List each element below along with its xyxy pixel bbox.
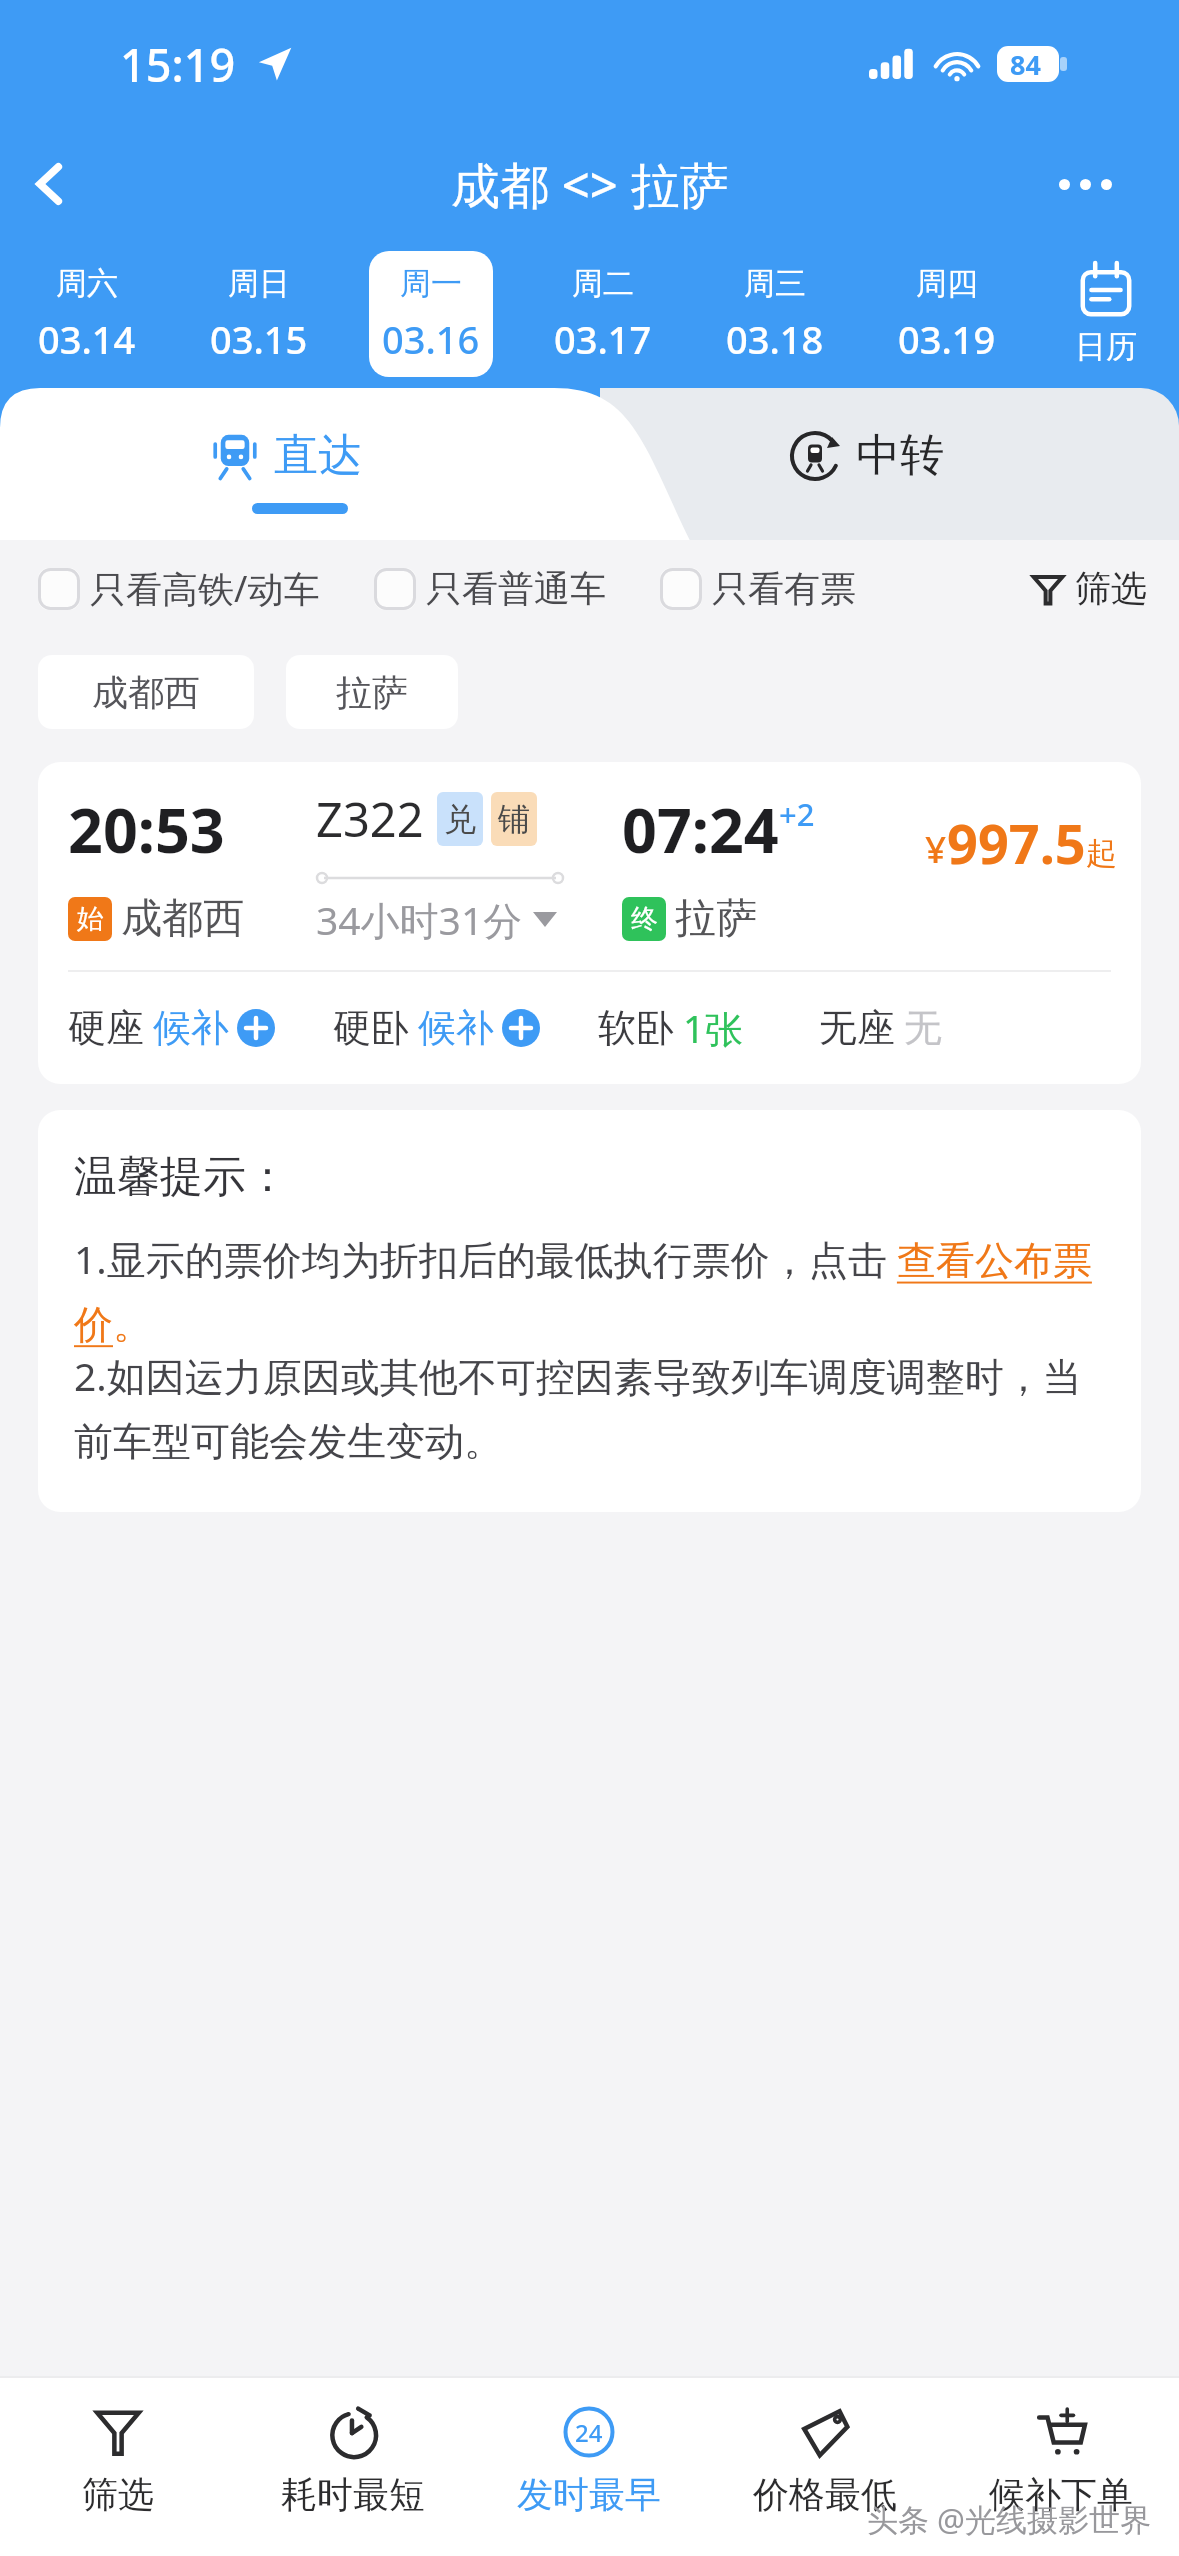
staticText: 软卧 (598, 1004, 674, 1052)
button[interactable]: 周二 (541, 251, 665, 377)
button[interactable]: 周三 (713, 251, 837, 377)
staticText: 无座 (819, 1004, 895, 1052)
button[interactable]: 无座 (819, 1004, 942, 1052)
staticText: 铺 (498, 799, 530, 839)
button[interactable]: 周日 (197, 251, 321, 377)
staticText: 起 (1086, 834, 1117, 873)
staticText: 候补 (153, 1004, 229, 1052)
staticText: 筛选 (1075, 566, 1147, 611)
staticText: 拉萨 (675, 893, 757, 945)
button[interactable]: 软卧 (598, 1002, 743, 1054)
staticText: 15:19 (120, 34, 236, 95)
staticText: 温馨提示： (74, 1150, 289, 1204)
staticText: 成都 <> 拉萨 (451, 151, 729, 218)
button[interactable]: 成都西 (38, 655, 254, 729)
button[interactable]: 硬卧 (333, 1004, 540, 1052)
button[interactable]: 只看有票 (660, 566, 856, 611)
staticText: 周一 (400, 264, 462, 303)
staticText: 2.如因运力原因或其他不可控因素导致列车调度调整时，当前车型可能会发生变动。 (74, 1349, 1113, 1466)
staticText: 只看高铁/动车 (90, 564, 320, 613)
button[interactable]: 中转 (790, 428, 944, 483)
staticText: 筛选 (82, 2472, 154, 2517)
staticText: 直达 (274, 428, 362, 483)
staticText: 周四 (916, 264, 978, 303)
staticText: 耗时最短 (281, 2472, 425, 2517)
button[interactable]: More options (1043, 142, 1127, 226)
staticText: 997.5 (947, 806, 1086, 880)
button[interactable]: Calendar (1033, 240, 1179, 388)
staticText: 03.14 (38, 313, 136, 365)
button[interactable]: 只看高铁/动车 (38, 564, 320, 613)
staticText: 1.显示的票价均为折扣后的最低执行票价，点击 查看公布票价。 (74, 1232, 1113, 1349)
staticText: +2 (779, 793, 815, 835)
button[interactable]: 周一 (369, 251, 493, 377)
button[interactable]: 24 (471, 2406, 707, 2556)
button[interactable]: 直达 (212, 428, 362, 483)
staticText: 兑 (444, 799, 476, 839)
staticText: 24 (575, 2416, 603, 2449)
staticText: 34小时31分 (316, 893, 523, 946)
staticText: 03.15 (210, 313, 308, 365)
staticText: 84 (1010, 46, 1041, 82)
button[interactable]: 价格最低 (707, 2406, 943, 2556)
button[interactable]: 硬座 (68, 1004, 275, 1052)
staticText: 拉萨 (336, 670, 408, 715)
button[interactable]: 拉萨 (286, 655, 458, 729)
staticText: 周六 (56, 264, 118, 303)
button[interactable]: 筛选 (0, 2406, 235, 2556)
staticText: 只看普通车 (426, 566, 606, 611)
staticText: 候补 (418, 1004, 494, 1052)
staticText: 中转 (856, 428, 944, 483)
staticText: 硬卧 (333, 1004, 409, 1052)
button[interactable]: Back (0, 134, 100, 234)
staticText: 候补下单 (989, 2472, 1133, 2517)
staticText: 周二 (572, 264, 634, 303)
staticText: 终 (631, 902, 658, 936)
staticText: 日历 (1075, 327, 1137, 366)
button[interactable]: 周四 (885, 251, 1009, 377)
staticText: 03.19 (898, 313, 996, 365)
staticText: 周三 (744, 264, 806, 303)
staticText: 03.16 (382, 313, 480, 365)
staticText: 只看有票 (712, 566, 856, 611)
staticText: Z322 (316, 787, 424, 851)
staticText: 周日 (228, 264, 290, 303)
button[interactable]: 筛选 (1031, 566, 1147, 611)
staticText: 成都西 (92, 670, 200, 715)
staticText: ¥ (925, 823, 947, 873)
button[interactable]: 20:53 (38, 762, 1141, 1084)
button[interactable]: 周六 (25, 251, 149, 377)
button[interactable]: 耗时最短 (235, 2406, 471, 2556)
staticText: 1张 (683, 1002, 743, 1054)
staticText: 价格最低 (753, 2472, 897, 2517)
staticText: 20:53 (68, 788, 225, 871)
staticText: 硬座 (68, 1004, 144, 1052)
staticText: 始 (77, 902, 104, 936)
staticText: 发时最早 (517, 2472, 661, 2517)
staticText: 03.17 (554, 313, 652, 365)
button[interactable]: 只看普通车 (374, 566, 606, 611)
staticText: 成都西 (121, 893, 244, 945)
staticText: 03.18 (726, 313, 824, 365)
staticText: 头条 @光线摄影世界 (867, 2498, 1151, 2540)
button[interactable]: 候补下单 (943, 2406, 1179, 2556)
staticText: 07:24 (622, 788, 779, 871)
staticText: 无 (904, 1004, 942, 1052)
